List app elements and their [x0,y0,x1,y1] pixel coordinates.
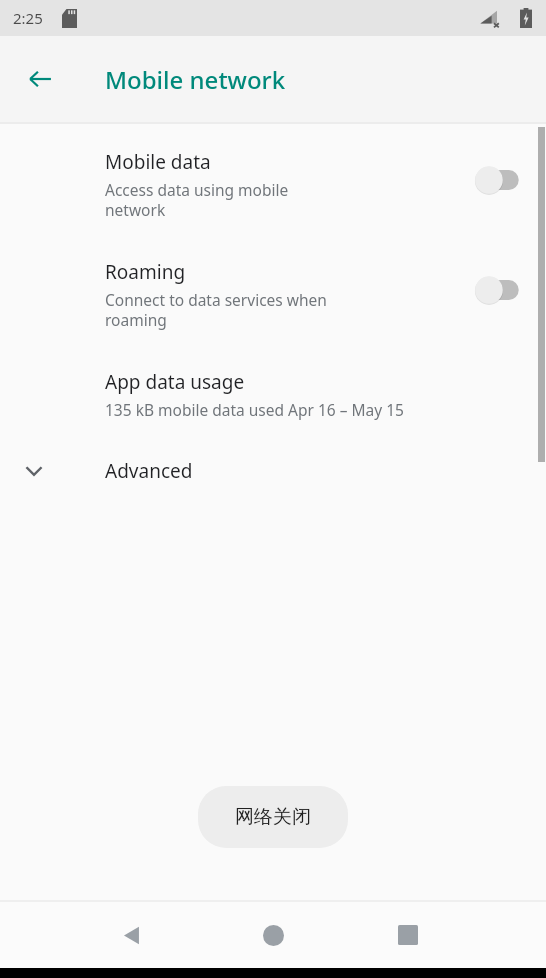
button[interactable]: App data usage [0,337,546,430]
staticText: 135 kB mobile data used Apr 16 – May 15 [105,399,404,420]
button[interactable]: Back [104,907,160,963]
button[interactable]: Recent apps [380,907,436,963]
button[interactable]: Mobile data [0,127,546,227]
button[interactable]: Back [16,55,64,103]
button[interactable]: 网络关闭 [198,786,348,848]
staticText: 网络关闭 [235,805,311,829]
button[interactable]: Advanced [0,430,546,498]
staticText: Advanced [105,458,193,484]
button[interactable]: Roaming [474,275,526,305]
staticText: Mobile network [105,63,286,96]
button[interactable]: Mobile data [474,165,526,195]
button[interactable]: Roaming [0,227,546,337]
staticText: Access data using mobile network [105,179,289,221]
staticText: 2:25 [13,8,43,28]
staticText: Connect to data services when roaming [105,289,327,331]
staticText: App data usage [105,369,245,395]
staticText: Roaming [105,259,186,285]
staticText: Mobile data [105,149,211,175]
button[interactable]: Home [245,907,301,963]
